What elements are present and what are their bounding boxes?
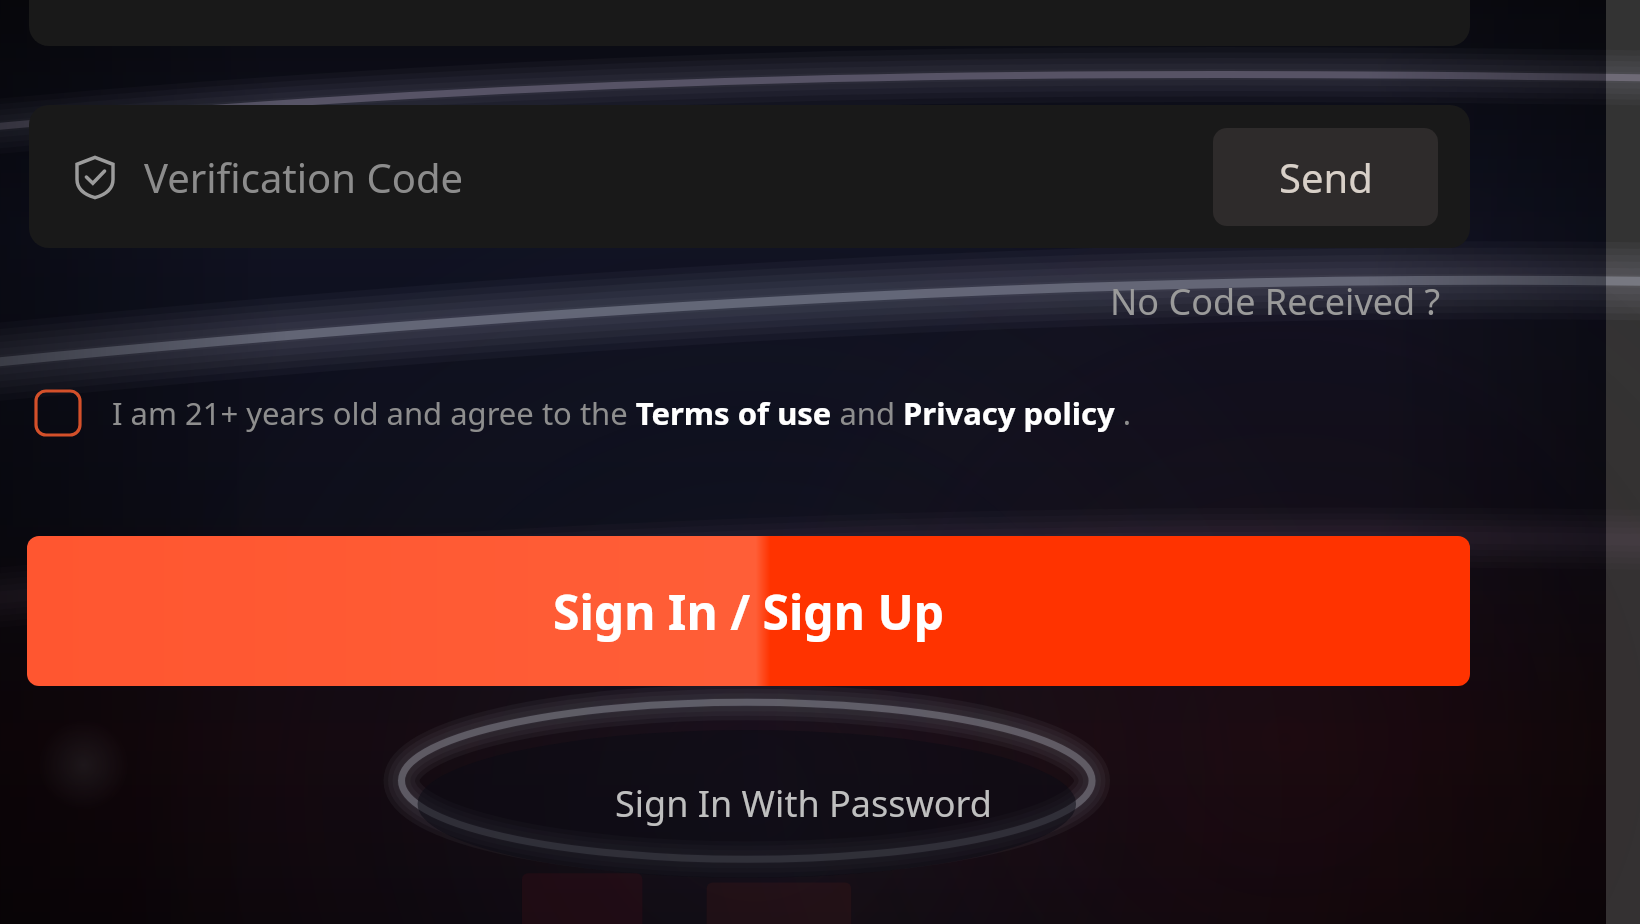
- button[interactable]: Send: [1213, 128, 1438, 226]
- button[interactable]: No Code Received ?: [1110, 272, 1465, 330]
- staticText: Verification Code: [144, 150, 464, 204]
- button[interactable]: Sign In / Sign Up: [27, 536, 1470, 686]
- button[interactable]: Verification Code: [29, 105, 1470, 248]
- staticText: Sign In With Password: [615, 779, 992, 828]
- other: Accept terms checkbox: [36, 391, 80, 435]
- staticText: No Code Received ?: [1110, 277, 1441, 326]
- button[interactable]: Accept terms checkbox: [36, 382, 1132, 444]
- staticText: I am 21+ years old and agree to the Term…: [112, 392, 1132, 434]
- staticText: Sign In / Sign Up: [553, 579, 945, 644]
- button[interactable]: Sign In With Password: [589, 771, 1018, 836]
- staticText: Send: [1279, 150, 1373, 204]
